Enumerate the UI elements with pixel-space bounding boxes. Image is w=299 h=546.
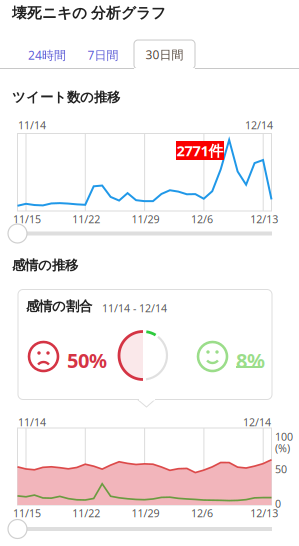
staticText: 12/13 [250,212,278,226]
staticText: 12/13 [250,506,278,520]
staticText: 感情の推移 [12,257,78,273]
button[interactable]: 30日間 [134,40,195,69]
staticText: 感情の割合 [26,298,92,314]
staticText: 30日間 [145,46,183,62]
staticText: 11/14 [18,415,46,429]
button[interactable]: 24時間 [18,41,76,69]
staticText: 100 [275,429,293,444]
staticText: 12/6 [191,506,213,520]
staticText: 壊死ニキの 分析グラフ [12,4,166,22]
staticText: 24時間 [28,47,66,63]
staticText: 12/14 [243,415,271,429]
staticText: 11/29 [132,506,160,520]
staticText: 11/14 - 12/14 [102,301,167,315]
staticText: 12/14 [245,118,273,132]
staticText: 50 [275,462,287,476]
staticText: 0 [275,496,281,511]
staticText: 11/22 [72,212,100,226]
staticText: 11/15 [13,506,41,520]
staticText: 11/29 [132,212,160,226]
staticText: 11/14 [18,118,46,132]
staticText: (%) [275,441,290,455]
staticText: 12/6 [191,212,213,226]
staticText: 11/22 [72,506,100,520]
staticText: 7日間 [87,47,118,63]
button[interactable]: 7日間 [80,41,126,69]
staticText: ツイート数の推移 [12,89,120,105]
staticText: 8% [236,347,265,374]
staticText: 11/15 [13,212,41,226]
staticText: 2771件 [176,141,223,160]
staticText: 50% [67,347,107,374]
